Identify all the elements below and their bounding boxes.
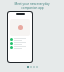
button[interactable] [10, 42, 30, 45]
button[interactable] [10, 46, 30, 49]
button[interactable] [10, 38, 30, 41]
staticText: Meet your new everyday [14, 2, 50, 6]
staticText: companion app [21, 6, 44, 10]
